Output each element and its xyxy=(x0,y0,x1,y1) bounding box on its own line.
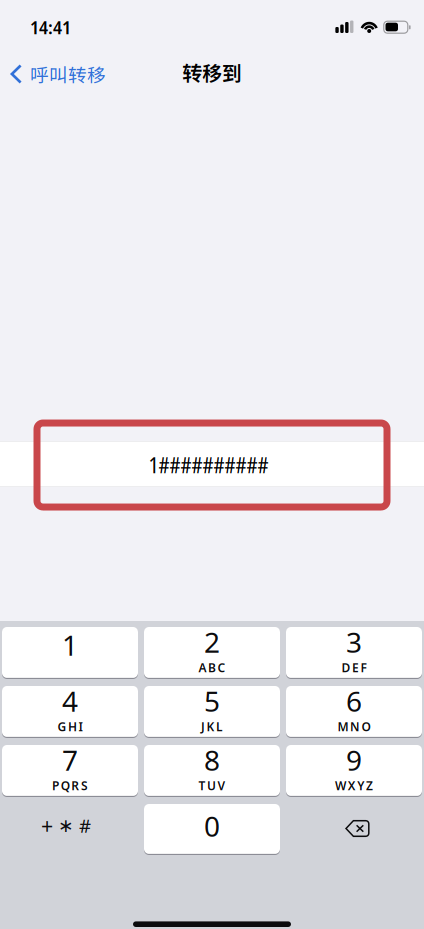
button[interactable]: 4 xyxy=(2,686,138,738)
button[interactable]: 1 xyxy=(2,627,138,679)
staticText: 2 xyxy=(204,623,220,661)
button[interactable]: 8 xyxy=(144,745,280,797)
button[interactable]: Symbols xyxy=(2,804,138,855)
button[interactable]: Delete xyxy=(286,804,422,855)
staticText: WXYZ xyxy=(335,777,373,794)
staticText: MNO xyxy=(337,718,371,735)
staticText: 14:41 xyxy=(30,14,71,40)
button[interactable]: 6 xyxy=(286,686,422,738)
staticText: PQRS xyxy=(52,777,88,794)
staticText: + xyxy=(41,811,53,840)
staticText: ABC xyxy=(198,659,226,676)
button[interactable]: 呼叫转移 xyxy=(0,54,116,94)
button[interactable]: 0 xyxy=(144,804,280,855)
button[interactable]: 7 xyxy=(2,745,138,797)
staticText: 1########## xyxy=(148,450,268,480)
staticText: DEF xyxy=(341,659,367,676)
staticText: 1 xyxy=(62,626,78,664)
staticText: 5 xyxy=(204,682,220,720)
staticText: 转移到 xyxy=(182,57,242,86)
staticText: 6 xyxy=(346,682,362,720)
staticText: GHI xyxy=(57,718,83,735)
staticText: 呼叫转移 xyxy=(30,60,106,87)
button[interactable]: 2 xyxy=(144,627,280,679)
staticText: 3 xyxy=(346,623,362,661)
staticText: 4 xyxy=(62,682,78,720)
staticText: 9 xyxy=(346,741,362,779)
staticText: ∗ xyxy=(58,815,74,836)
button[interactable]: 5 xyxy=(144,686,280,738)
staticText: # xyxy=(79,813,91,838)
button[interactable]: 9 xyxy=(286,745,422,797)
staticText: 7 xyxy=(62,741,78,779)
staticText: JKL xyxy=(201,718,223,735)
button[interactable]: 3 xyxy=(286,627,422,679)
staticText: 8 xyxy=(204,741,220,779)
staticText: TUV xyxy=(198,777,226,794)
staticText: 0 xyxy=(204,807,220,845)
